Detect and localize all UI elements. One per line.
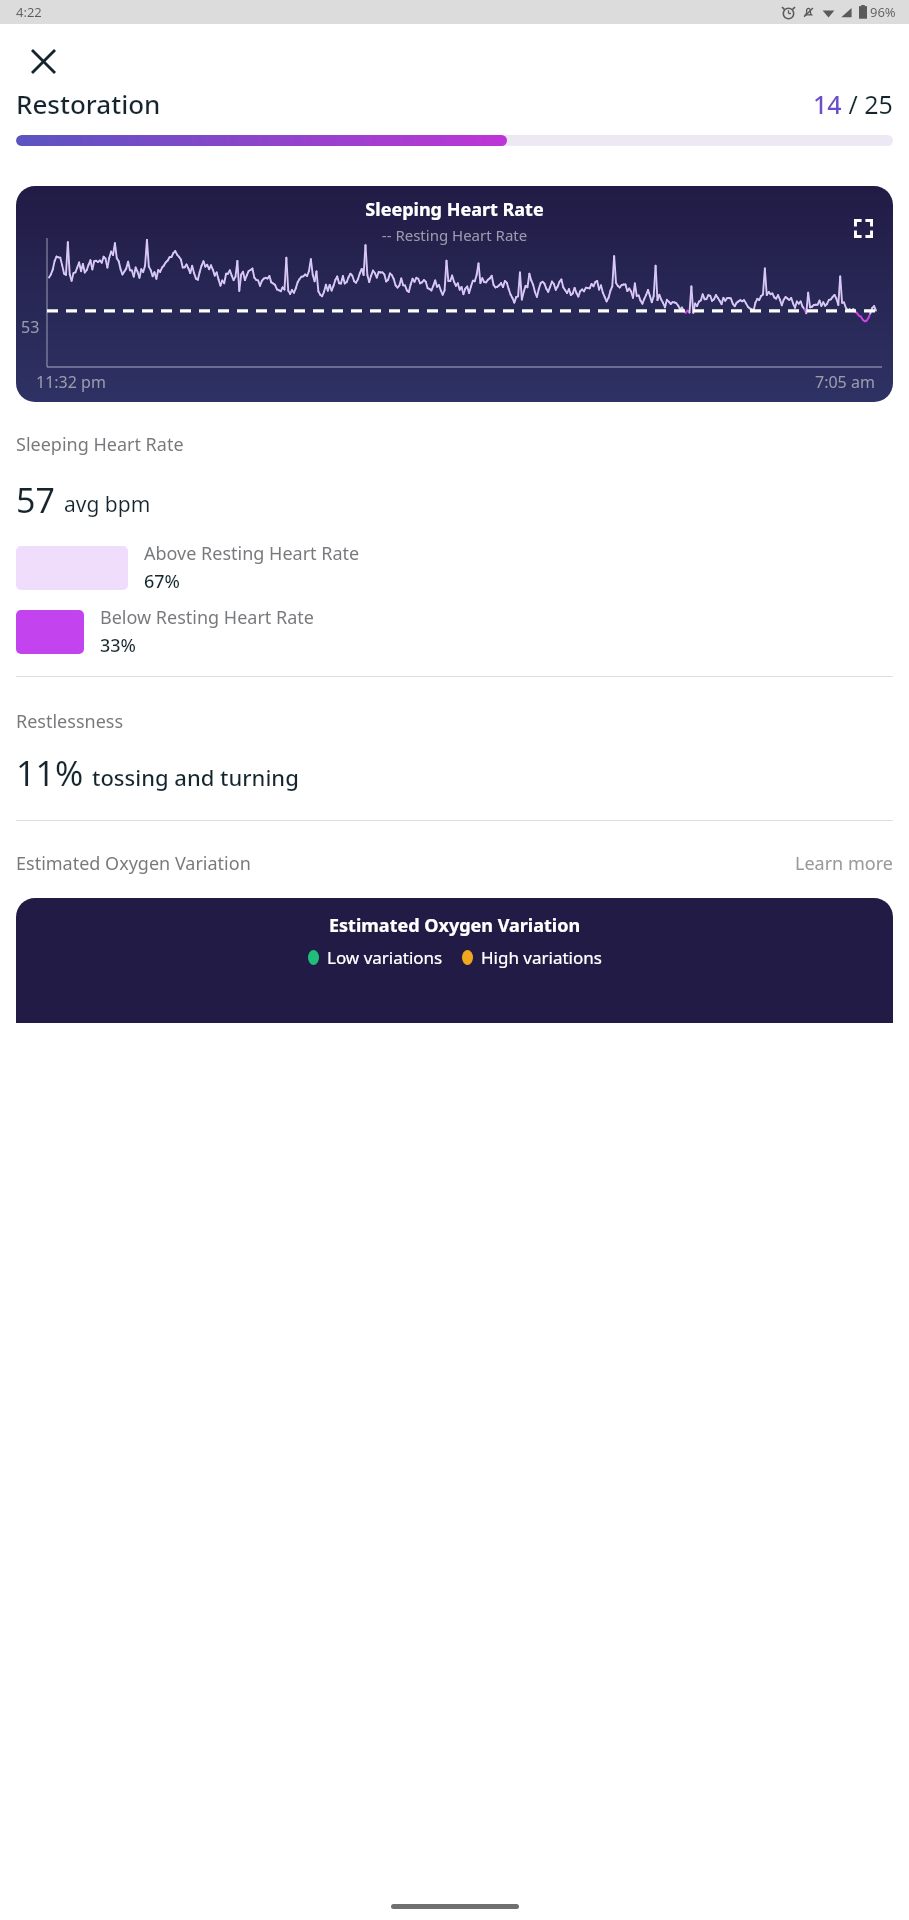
- staticText: 14: [813, 87, 842, 121]
- button[interactable]: Below Resting Heart Rate: [16, 605, 893, 658]
- staticText: Below Resting Heart Rate: [100, 605, 314, 630]
- staticText: 53: [21, 316, 40, 338]
- button[interactable]: Above Resting Heart Rate: [16, 541, 893, 594]
- staticText: avg bpm: [64, 490, 151, 519]
- staticText: Above Resting Heart Rate: [144, 541, 360, 566]
- button[interactable]: Expand chart: [845, 210, 881, 246]
- staticText: / 25: [842, 87, 893, 121]
- staticText: Restoration: [16, 86, 161, 121]
- staticText: Sleeping Heart Rate: [16, 197, 893, 222]
- staticText: 7:05 am: [815, 371, 875, 393]
- staticText: 33%: [100, 633, 136, 658]
- staticText: Low variations: [327, 946, 443, 969]
- staticText: Restlessness: [16, 709, 124, 734]
- staticText: -- Resting Heart Rate: [16, 225, 893, 245]
- staticText: Estimated Oxygen Variation: [329, 913, 581, 938]
- button[interactable]: Sleeping Heart Rate: [16, 186, 893, 402]
- button[interactable]: Close: [20, 38, 66, 84]
- staticText: tossing and turning: [92, 762, 299, 792]
- staticText: 11:32 pm: [36, 371, 106, 393]
- staticText: 96%: [870, 3, 896, 21]
- staticText: 67%: [144, 569, 180, 594]
- staticText: 4:22: [16, 3, 42, 21]
- button[interactable]: Estimated Oxygen Variation: [16, 898, 893, 1023]
- staticText: Estimated Oxygen Variation: [16, 851, 251, 876]
- staticText: 11%: [16, 750, 84, 796]
- button[interactable]: Learn more: [795, 851, 893, 876]
- staticText: Learn more: [795, 851, 893, 876]
- staticText: High variations: [481, 946, 602, 969]
- staticText: Sleeping Heart Rate: [16, 432, 184, 457]
- staticText: 57: [16, 477, 55, 523]
